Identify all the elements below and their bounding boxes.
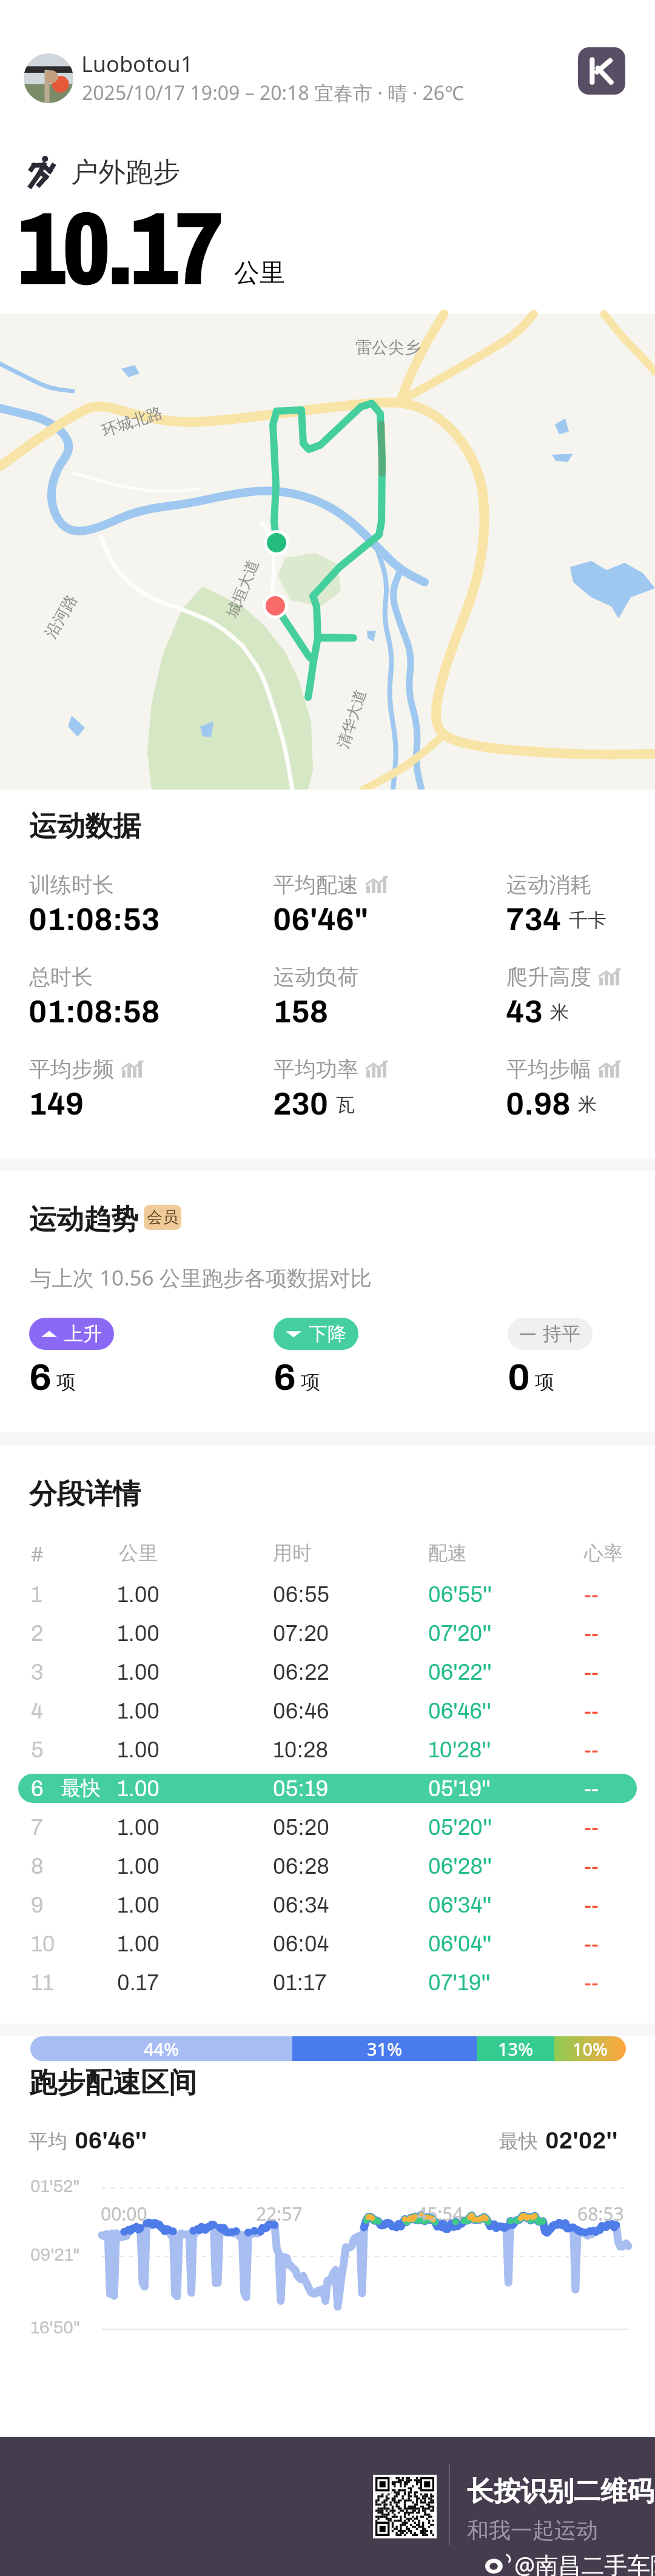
staticText: -- [584, 1777, 599, 1800]
staticText: 运动消耗 [506, 871, 591, 898]
staticText: 06:04 [273, 1932, 329, 1956]
staticText: 01:08:58 [29, 995, 160, 1028]
staticText: 06'22'' [428, 1660, 492, 1684]
staticText: 05'19'' [428, 1777, 491, 1800]
button[interactable]: 2 [0, 1614, 655, 1652]
staticText: 06'46" [273, 903, 369, 936]
staticText: -- [584, 1660, 599, 1684]
staticText: 平均功率 [274, 1056, 358, 1082]
staticText: 06:28 [273, 1854, 329, 1878]
staticText: 平均 [29, 2129, 67, 2153]
staticText: 02'02'' [545, 2128, 618, 2153]
staticText: -- [584, 1622, 599, 1645]
staticText: 0.98 [506, 1087, 571, 1121]
button[interactable]: 6 [0, 1769, 655, 1808]
staticText: 6 [274, 1357, 296, 1398]
staticText: 下降 [309, 1322, 346, 1346]
button[interactable]: 7 [0, 1808, 655, 1846]
button[interactable]: 11 [0, 1963, 655, 2002]
staticText: 配速 [428, 1541, 467, 1565]
staticText: 1.00 [117, 1699, 160, 1723]
staticText: 01:17 [273, 1971, 327, 1994]
staticText: 11 [31, 1971, 54, 1994]
staticText: 06:22 [273, 1660, 329, 1684]
staticText: 01'52" [30, 2177, 80, 2196]
staticText: 06'55'' [428, 1583, 492, 1606]
staticText: 1.00 [117, 1932, 160, 1956]
staticText: 公里 [119, 1541, 158, 1565]
staticText: 爬升高度 [506, 964, 591, 990]
staticText: 用时 [273, 1541, 312, 1565]
staticText: 68:53 [577, 2201, 624, 2226]
staticText: 公里 [234, 257, 285, 289]
staticText: 05'20'' [428, 1816, 492, 1839]
staticText: 最快 [61, 1776, 101, 1801]
staticText: 6 [31, 1777, 44, 1800]
button[interactable]: 持平 [520, 1318, 580, 1350]
staticText: 项 [301, 1370, 320, 1394]
staticText: 10'28'' [428, 1738, 491, 1762]
button[interactable]: 会员 [144, 1205, 181, 1230]
staticText: 3 [31, 1660, 44, 1684]
staticText: 1.00 [117, 1583, 160, 1606]
staticText: 上升 [64, 1322, 102, 1346]
staticText: 总时长 [29, 964, 93, 990]
staticText: 1.00 [117, 1816, 160, 1839]
staticText: 平均步频 [29, 1056, 114, 1082]
staticText: 雷公尖乡 [355, 337, 421, 358]
button[interactable]: 9 [0, 1885, 655, 1924]
button[interactable]: 3 [0, 1652, 655, 1691]
staticText: 149 [29, 1087, 84, 1121]
staticText: 持平 [543, 1322, 580, 1346]
staticText: 06:55 [273, 1583, 330, 1606]
staticText: 清华大道 [333, 687, 370, 751]
staticText: 10% [573, 2037, 608, 2061]
staticText: 1.00 [117, 1893, 160, 1917]
staticText: 与上次 10.56 公里跑步各项数据对比 [30, 1263, 372, 1292]
staticText: -- [584, 1971, 599, 1994]
staticText: 06'04'' [428, 1932, 492, 1956]
staticText: 31% [367, 2037, 402, 2061]
button[interactable]: Keep [578, 47, 625, 95]
staticText: 跑步配速区间 [29, 2065, 196, 2101]
staticText: 最快 [499, 2129, 538, 2153]
button[interactable]: 8 [0, 1846, 655, 1885]
button[interactable]: 44% [30, 2036, 626, 2061]
staticText: -- [584, 1699, 599, 1723]
button[interactable]: 4 [0, 1691, 655, 1730]
staticText: 分段详情 [29, 1477, 141, 1512]
staticText: 09'21" [30, 2246, 80, 2265]
staticText: 0.17 [117, 1971, 160, 1994]
button[interactable]: 10 [0, 1924, 655, 1963]
staticText: 2 [31, 1622, 44, 1645]
staticText: 06:34 [273, 1893, 329, 1917]
staticText: 10 [31, 1932, 55, 1956]
staticText: 16'50" [30, 2318, 81, 2338]
button[interactable]: 下降 [286, 1318, 346, 1350]
staticText: 07:20 [273, 1622, 329, 1645]
staticText: 运动负荷 [274, 964, 358, 990]
staticText: 长按识别二维码 [467, 2475, 654, 2508]
staticText: 10.17 [19, 180, 222, 314]
staticText: 22:57 [256, 2201, 303, 2226]
staticText: 230 [273, 1087, 329, 1121]
button[interactable] [24, 53, 73, 103]
staticText: 训练时长 [29, 871, 114, 898]
staticText: # [31, 1541, 44, 1568]
button[interactable]: 上升 [41, 1318, 102, 1350]
staticText: -- [584, 1854, 599, 1878]
staticText: 米 [578, 1093, 597, 1116]
staticText: 1.00 [117, 1660, 160, 1684]
button[interactable]: 5 [0, 1730, 655, 1769]
staticText: 05:20 [273, 1816, 329, 1839]
staticText: 43 [506, 995, 543, 1028]
staticText: 项 [56, 1370, 76, 1394]
staticText: 06'28'' [428, 1854, 492, 1878]
staticText: 米 [550, 1001, 569, 1024]
staticText: 10:28 [273, 1738, 329, 1762]
staticText: 户外跑步 [71, 155, 180, 190]
staticText: 项 [535, 1370, 554, 1394]
staticText: @南昌二手车阿郑 [514, 2549, 655, 2576]
button[interactable]: 1 [0, 1575, 655, 1614]
staticText: 心率 [584, 1541, 623, 1565]
